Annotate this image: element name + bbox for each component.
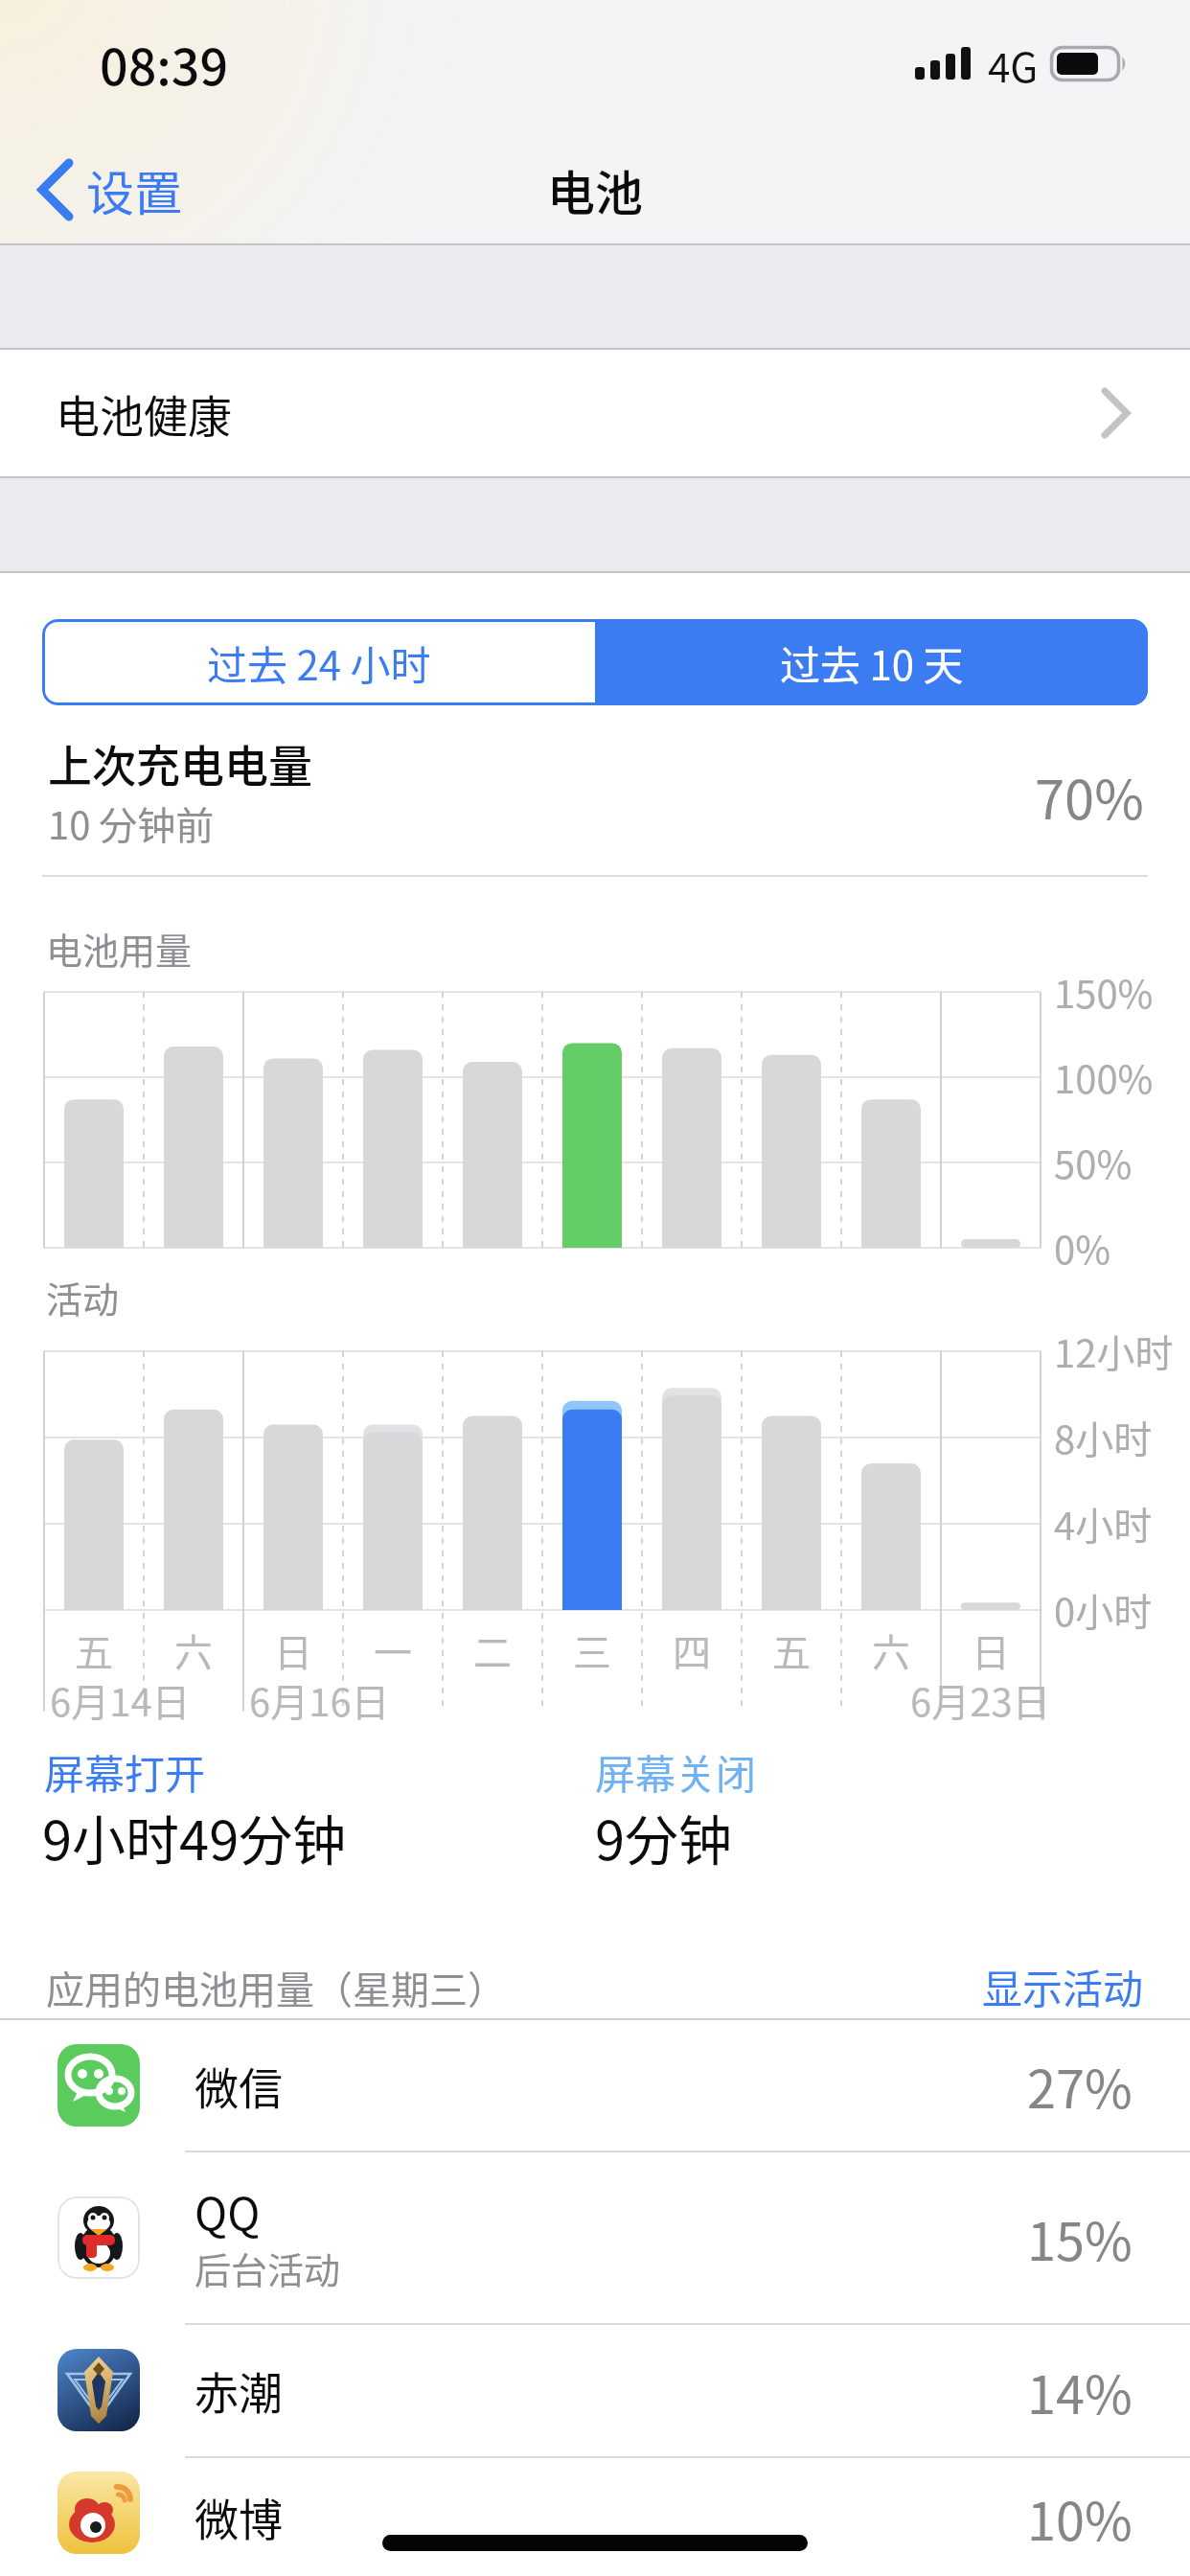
staticText: 五	[772, 1622, 811, 1678]
staticText: 日	[274, 1622, 312, 1678]
staticText: 一	[374, 1622, 412, 1678]
staticText: 0%	[1054, 1220, 1111, 1276]
staticText: 15%	[1027, 2200, 1133, 2275]
button[interactable]: 微信	[0, 2020, 1190, 2150]
staticText: 9分钟	[595, 1798, 733, 1871]
button[interactable]: 微博	[0, 2458, 1190, 2576]
staticText: 显示活动	[982, 1957, 1144, 2015]
staticText: 二	[473, 1622, 512, 1678]
staticText: QQ	[195, 2179, 261, 2239]
button[interactable]: QQ	[0, 2152, 1190, 2323]
staticText: 50%	[1054, 1135, 1133, 1190]
staticText: 150%	[1054, 964, 1154, 1020]
staticText: 6月23日	[910, 1672, 1051, 1728]
staticText: 12小时	[1054, 1323, 1174, 1379]
staticText: 4小时	[1054, 1496, 1153, 1552]
staticText: 三	[573, 1622, 611, 1678]
staticText: 6月14日	[50, 1672, 191, 1728]
staticText: 后台活动	[195, 2242, 341, 2294]
button[interactable]: 电池健康	[0, 350, 1190, 476]
staticText: 10%	[1027, 2480, 1133, 2555]
staticText: 微信	[195, 2054, 283, 2118]
button[interactable]: 过去 10 天	[595, 619, 1148, 705]
staticText: 设置	[86, 155, 182, 224]
staticText: 08:39	[100, 28, 229, 100]
staticText: 六	[872, 1622, 910, 1678]
staticText: 五	[75, 1622, 113, 1678]
staticText: 8小时	[1054, 1410, 1153, 1465]
staticText: 四	[673, 1622, 711, 1678]
button[interactable]: 设置	[27, 146, 218, 234]
staticText: 10 分钟前	[48, 795, 215, 851]
staticText: 9小时49分钟	[42, 1798, 347, 1871]
staticText: 0小时	[1054, 1582, 1153, 1638]
staticText: 100%	[1054, 1049, 1154, 1105]
staticText: 过去 10 天	[780, 633, 964, 692]
staticText: 上次充电电量	[48, 731, 312, 795]
staticText: 微博	[195, 2485, 283, 2549]
staticText: 14%	[1027, 2354, 1133, 2428]
staticText: 6月16日	[249, 1672, 390, 1728]
staticText: 活动	[46, 1271, 120, 1323]
button[interactable]: 显示活动	[914, 1955, 1144, 2016]
staticText: 过去 24 小时	[207, 633, 431, 692]
staticText: 4G	[988, 35, 1039, 94]
staticText: 电池用量	[46, 922, 193, 975]
staticText: 日	[972, 1622, 1010, 1678]
button[interactable]: 过去 24 小时	[42, 619, 595, 705]
staticText: 70%	[1035, 757, 1144, 835]
staticText: 屏幕关闭	[595, 1742, 757, 1801]
staticText: 赤潮	[195, 2358, 283, 2423]
staticText: 应用的电池用量（星期三）	[46, 1960, 506, 2015]
staticText: 电池	[547, 155, 643, 224]
button[interactable]: 赤潮	[0, 2325, 1190, 2456]
staticText: 27%	[1027, 2048, 1133, 2123]
staticText: 屏幕打开	[44, 1742, 206, 1801]
staticText: 六	[174, 1622, 213, 1678]
staticText: 电池健康	[56, 381, 232, 446]
